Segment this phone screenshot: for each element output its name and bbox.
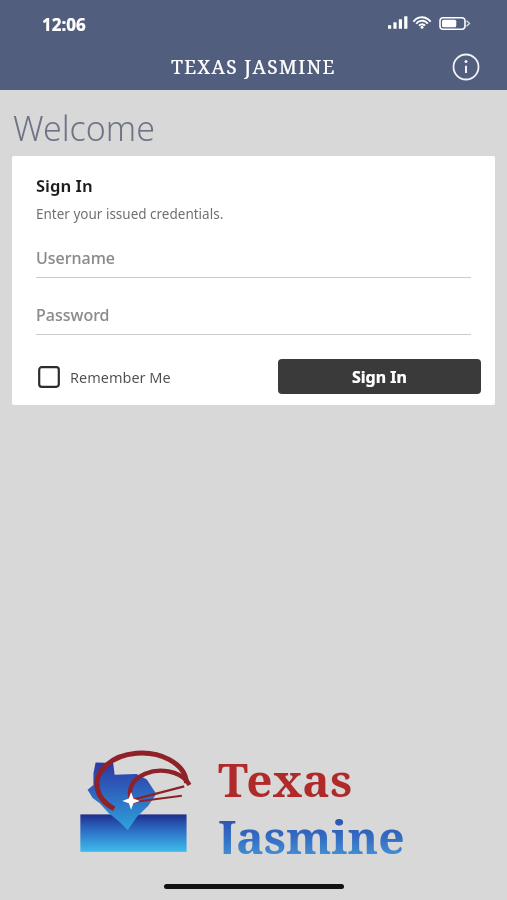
staticText: Texas	[218, 748, 353, 811]
staticText: TEXAS JASMINE	[171, 54, 336, 80]
staticText: Remember Me	[70, 367, 171, 387]
button[interactable]: Remember Me	[36, 362, 173, 392]
staticText: Welcome	[13, 105, 155, 151]
button[interactable]: Sign In	[278, 359, 481, 394]
staticText: Password	[36, 304, 110, 326]
staticText: Username	[36, 247, 116, 269]
staticText: Enter your issued credentials.	[36, 205, 224, 223]
staticText: Sign In	[36, 174, 93, 196]
button[interactable]: Username	[36, 247, 471, 278]
staticText: Jasmine	[218, 805, 405, 854]
button[interactable]: Password	[36, 304, 471, 335]
button[interactable]: Information	[448, 49, 484, 85]
staticText: 12:06	[42, 13, 86, 36]
staticText: Sign In	[352, 366, 407, 388]
